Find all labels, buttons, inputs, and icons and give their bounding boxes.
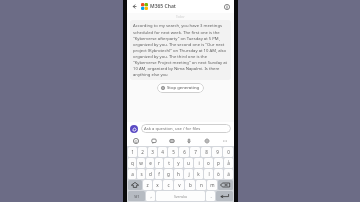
button[interactable]: Settings xyxy=(202,136,212,146)
button[interactable]: Copilot xyxy=(130,125,138,133)
button[interactable]: ä xyxy=(224,169,233,179)
button[interactable]: f xyxy=(155,169,163,179)
staticText: Ask a question, use / for files xyxy=(144,126,201,132)
button[interactable]: 8 xyxy=(201,147,211,157)
button[interactable]: u xyxy=(184,158,193,168)
staticText: y xyxy=(177,160,180,166)
staticText: i xyxy=(198,160,200,166)
button[interactable]: 5 xyxy=(168,147,178,157)
staticText: x xyxy=(156,182,159,188)
button[interactable]: !#1 xyxy=(128,191,145,201)
button[interactable]: . xyxy=(206,191,215,201)
staticText: s xyxy=(140,171,143,177)
staticText: d xyxy=(149,171,152,177)
button[interactable]: d xyxy=(146,169,154,179)
staticText: a xyxy=(131,171,134,177)
button[interactable]: ö xyxy=(214,169,223,179)
button[interactable]: According to my search, you have 3 meeti… xyxy=(130,20,231,80)
staticText: Stop generating xyxy=(167,85,200,91)
button[interactable]: p xyxy=(214,158,223,168)
staticText: e xyxy=(149,160,152,166)
button[interactable]: n xyxy=(196,180,206,190)
staticText: !#1 xyxy=(134,194,140,199)
button[interactable]: Stop generating xyxy=(157,83,204,93)
staticText: ä xyxy=(227,171,230,177)
button[interactable]: c xyxy=(163,180,173,190)
button[interactable]: i xyxy=(194,158,203,168)
button[interactable]: Info xyxy=(222,2,231,11)
button[interactable]: , xyxy=(146,191,155,201)
button[interactable]: g xyxy=(164,169,173,179)
button[interactable]: More options xyxy=(220,136,230,146)
staticText: o xyxy=(207,160,210,166)
button[interactable]: w xyxy=(137,158,145,168)
staticText: k xyxy=(197,171,200,177)
staticText: 2 xyxy=(141,149,144,155)
button[interactable]: 7 xyxy=(190,147,200,157)
staticText: . xyxy=(210,193,212,199)
button[interactable]: 4 xyxy=(158,147,167,157)
staticText: m xyxy=(210,182,215,188)
button[interactable]: y xyxy=(174,158,183,168)
staticText: According to my search, you have 3 meeti… xyxy=(133,23,228,77)
button[interactable]: Voice xyxy=(184,136,194,146)
button[interactable]: 1 xyxy=(128,147,137,157)
button[interactable]: e xyxy=(146,158,154,168)
button[interactable]: r xyxy=(155,158,163,168)
button[interactable]: Backspace xyxy=(218,180,233,190)
staticText: 6 xyxy=(183,149,186,155)
button[interactable]: m xyxy=(207,180,217,190)
button[interactable]: s xyxy=(137,169,145,179)
staticText: w xyxy=(139,160,143,166)
staticText: u xyxy=(187,160,190,166)
button[interactable]: 2 xyxy=(138,147,147,157)
button[interactable]: z xyxy=(143,180,152,190)
staticText: l xyxy=(208,171,210,177)
staticText: q xyxy=(131,160,134,166)
button[interactable]: Ask a question, use / for files xyxy=(141,124,231,133)
staticText: 9 xyxy=(216,149,219,155)
button[interactable]: Shift xyxy=(128,180,142,190)
staticText: 7 xyxy=(194,149,197,155)
button[interactable]: Format xyxy=(167,136,177,146)
button[interactable]: Sticker xyxy=(149,136,159,146)
staticText: Svenska xyxy=(174,194,187,199)
button[interactable]: v xyxy=(174,180,184,190)
button[interactable]: Emoji xyxy=(131,136,141,146)
button[interactable]: h xyxy=(174,169,183,179)
staticText: Today xyxy=(176,15,185,18)
staticText: 8 xyxy=(205,149,208,155)
staticText: 4 xyxy=(161,149,164,155)
button[interactable]: Back xyxy=(130,2,139,11)
staticText: c xyxy=(167,182,170,188)
staticText: g xyxy=(167,171,170,177)
staticText: f xyxy=(158,171,160,177)
staticText: M365 Chat xyxy=(150,3,176,10)
button[interactable]: Enter xyxy=(216,191,233,201)
staticText: z xyxy=(146,182,149,188)
button[interactable]: x xyxy=(153,180,162,190)
staticText: j xyxy=(188,171,190,177)
staticText: t xyxy=(168,160,170,166)
staticText: 5 xyxy=(172,149,175,155)
staticText: ö xyxy=(217,171,220,177)
button[interactable]: 0 xyxy=(223,147,233,157)
staticText: 0 xyxy=(227,149,230,155)
staticText: 1 xyxy=(131,149,134,155)
button[interactable]: 6 xyxy=(179,147,189,157)
staticText: b xyxy=(189,182,192,188)
staticText: n xyxy=(200,182,203,188)
button[interactable]: l xyxy=(204,169,213,179)
button[interactable]: 9 xyxy=(212,147,222,157)
button[interactable]: t xyxy=(164,158,173,168)
button[interactable]: k xyxy=(194,169,203,179)
button[interactable]: å xyxy=(224,158,233,168)
button[interactable]: b xyxy=(185,180,195,190)
button[interactable]: q xyxy=(128,158,136,168)
staticText: h xyxy=(177,171,180,177)
button[interactable]: Space xyxy=(156,191,205,201)
button[interactable]: 3 xyxy=(148,147,157,157)
button[interactable]: a xyxy=(128,169,136,179)
button[interactable]: j xyxy=(184,169,193,179)
button[interactable]: o xyxy=(204,158,213,168)
